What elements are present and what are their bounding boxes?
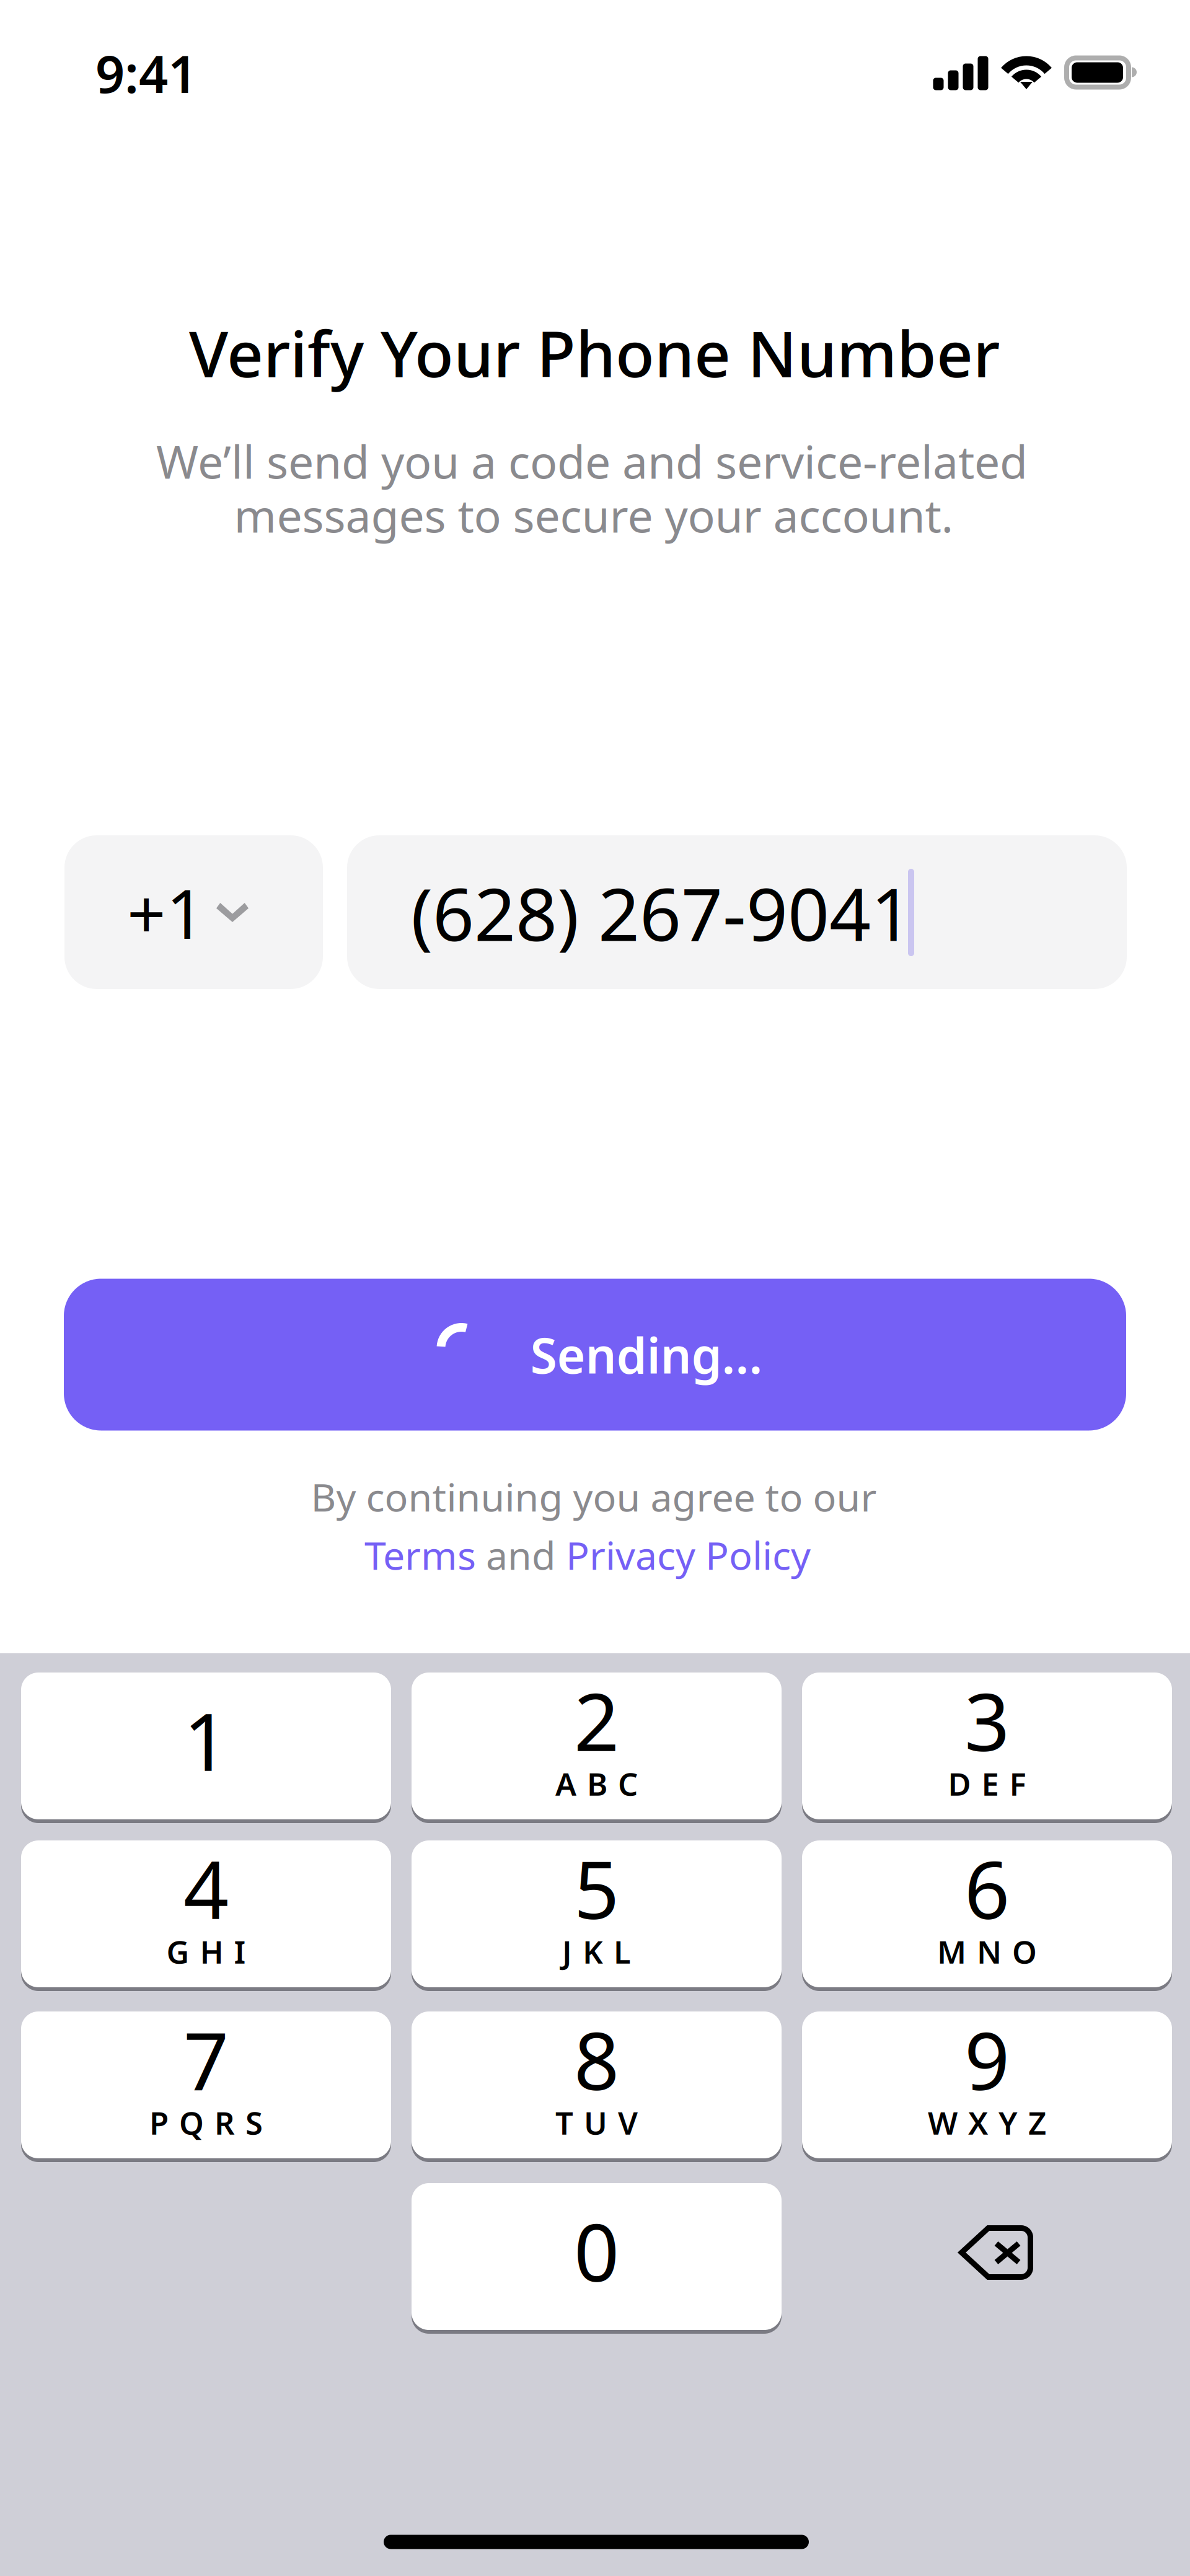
staticText: Verify Your Phone Number: [189, 310, 1000, 395]
staticText: 6: [964, 1835, 1010, 1941]
button[interactable]: Phone number: [347, 835, 1127, 989]
button[interactable]: Country code plus one: [64, 835, 323, 989]
staticText: ABC: [555, 1763, 638, 1804]
staticText: Privacy Policy: [566, 1529, 811, 1581]
staticText: 2: [574, 1668, 619, 1773]
staticText: 4: [183, 1835, 229, 1941]
staticText: +1: [127, 868, 205, 958]
button[interactable]: Terms: [364, 1529, 476, 1581]
staticText: 0: [574, 2198, 619, 2303]
staticText: DEF: [948, 1763, 1026, 1804]
button[interactable]: 0: [412, 2181, 782, 2332]
button[interactable]: 1: [21, 1671, 391, 1821]
button[interactable]: Delete: [813, 2182, 1183, 2329]
button[interactable]: Sending...: [64, 1279, 1126, 1431]
staticText: 5: [574, 1835, 619, 1941]
staticText: GHI: [166, 1931, 246, 1972]
staticText: JKL: [562, 1931, 631, 1972]
button[interactable]: 9: [802, 2010, 1172, 2160]
button[interactable]: 8: [412, 2010, 782, 2160]
staticText: By continuing you agree to our: [311, 1471, 877, 1522]
staticText: 8: [574, 2007, 619, 2112]
staticText: TUV: [555, 2102, 638, 2143]
staticText: messages to secure your account.: [234, 485, 954, 545]
staticText: 9: [964, 2007, 1010, 2112]
staticText: 9:41: [95, 39, 197, 107]
button[interactable]: 6: [802, 1839, 1172, 1989]
staticText: and: [476, 1529, 566, 1581]
staticText: We’ll send you a code and service-relate…: [156, 431, 1028, 491]
staticText: 1: [183, 1687, 229, 1793]
button[interactable]: Privacy Policy: [566, 1529, 811, 1581]
staticText: WXYZ: [928, 2102, 1046, 2143]
staticText: 3: [964, 1668, 1010, 1773]
button[interactable]: 7: [21, 2010, 391, 2160]
staticText: 7: [183, 2007, 229, 2112]
button[interactable]: 5: [412, 1839, 782, 1989]
button[interactable]: 2: [412, 1671, 782, 1821]
staticText: PQRS: [149, 2102, 263, 2143]
staticText: MNO: [937, 1931, 1037, 1972]
staticText: Terms: [364, 1529, 476, 1581]
staticText: Sending...: [530, 1322, 763, 1387]
staticText: (628) 267-9041: [411, 864, 912, 961]
button[interactable]: 3: [802, 1671, 1172, 1821]
button[interactable]: 4: [21, 1839, 391, 1989]
